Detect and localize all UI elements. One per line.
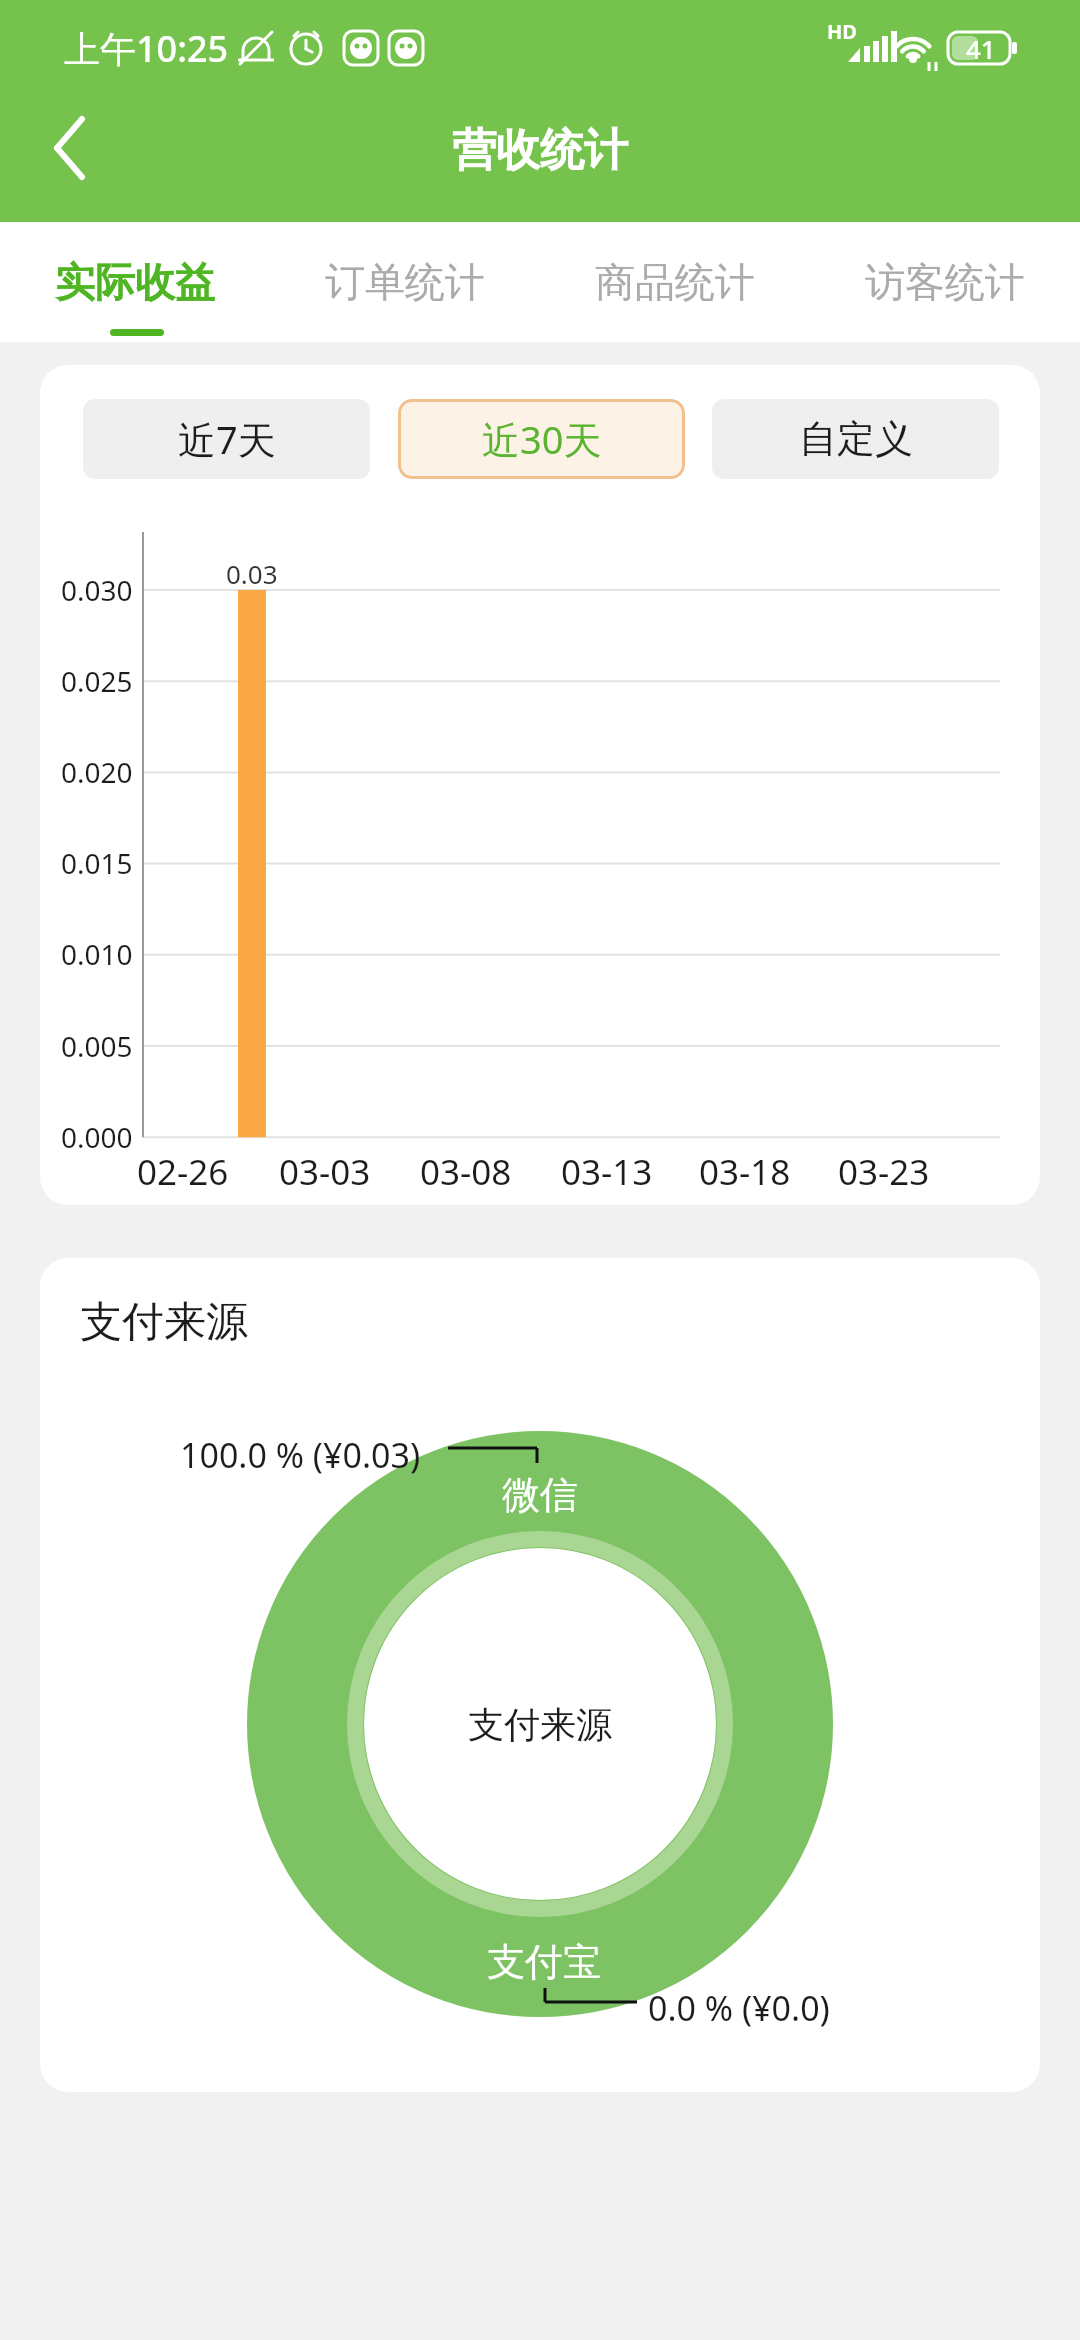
staticText: 商品统计 [595,257,755,307]
staticText: 微信 [502,1471,578,1519]
staticText: 0.000 [61,1118,133,1156]
staticText: 支付来源 [80,1296,248,1349]
staticText: 100.0 % (¥0.03) [180,1432,421,1478]
staticText: 近30天 [482,413,602,465]
button[interactable]: 商品统计 [540,222,810,342]
staticText: 0.025 [61,662,133,700]
staticText: 0.015 [61,844,133,882]
staticText: 0.010 [61,935,133,973]
staticText: 03-18 [699,1148,791,1196]
staticText: 上午10:25 [64,24,229,73]
staticText: 0.03 [226,556,278,591]
button[interactable]: 近30天 [398,399,685,479]
button[interactable]: 近7天 [83,399,370,479]
staticText: 自定义 [799,415,913,463]
staticText: 0.030 [61,571,133,609]
button[interactable]: 实际收益 [0,222,270,342]
button[interactable]: 自定义 [712,399,999,479]
staticText: 0.005 [61,1027,133,1065]
staticText: 支付宝 [487,1938,601,1986]
staticText: 订单统计 [325,257,485,307]
button[interactable]: 订单统计 [270,222,540,342]
staticText: 实际收益 [55,257,215,307]
staticText: 03-03 [279,1148,371,1196]
staticText: 0.0 % (¥0.0) [648,1985,830,2031]
staticText: 0.020 [61,753,133,791]
staticText: HD [827,18,857,45]
staticText: 03-13 [561,1148,653,1196]
staticText: 营收统计 [452,123,628,178]
staticText: 访客统计 [865,257,1025,307]
button[interactable]: 访客统计 [810,222,1080,342]
staticText: 近7天 [178,413,276,465]
staticText: 41 [966,31,996,66]
staticText: 03-23 [838,1148,930,1196]
staticText: 支付来源 [468,1702,612,1747]
staticText: 02-26 [137,1148,229,1196]
button[interactable] [20,105,120,195]
staticText: 03-08 [420,1148,512,1196]
